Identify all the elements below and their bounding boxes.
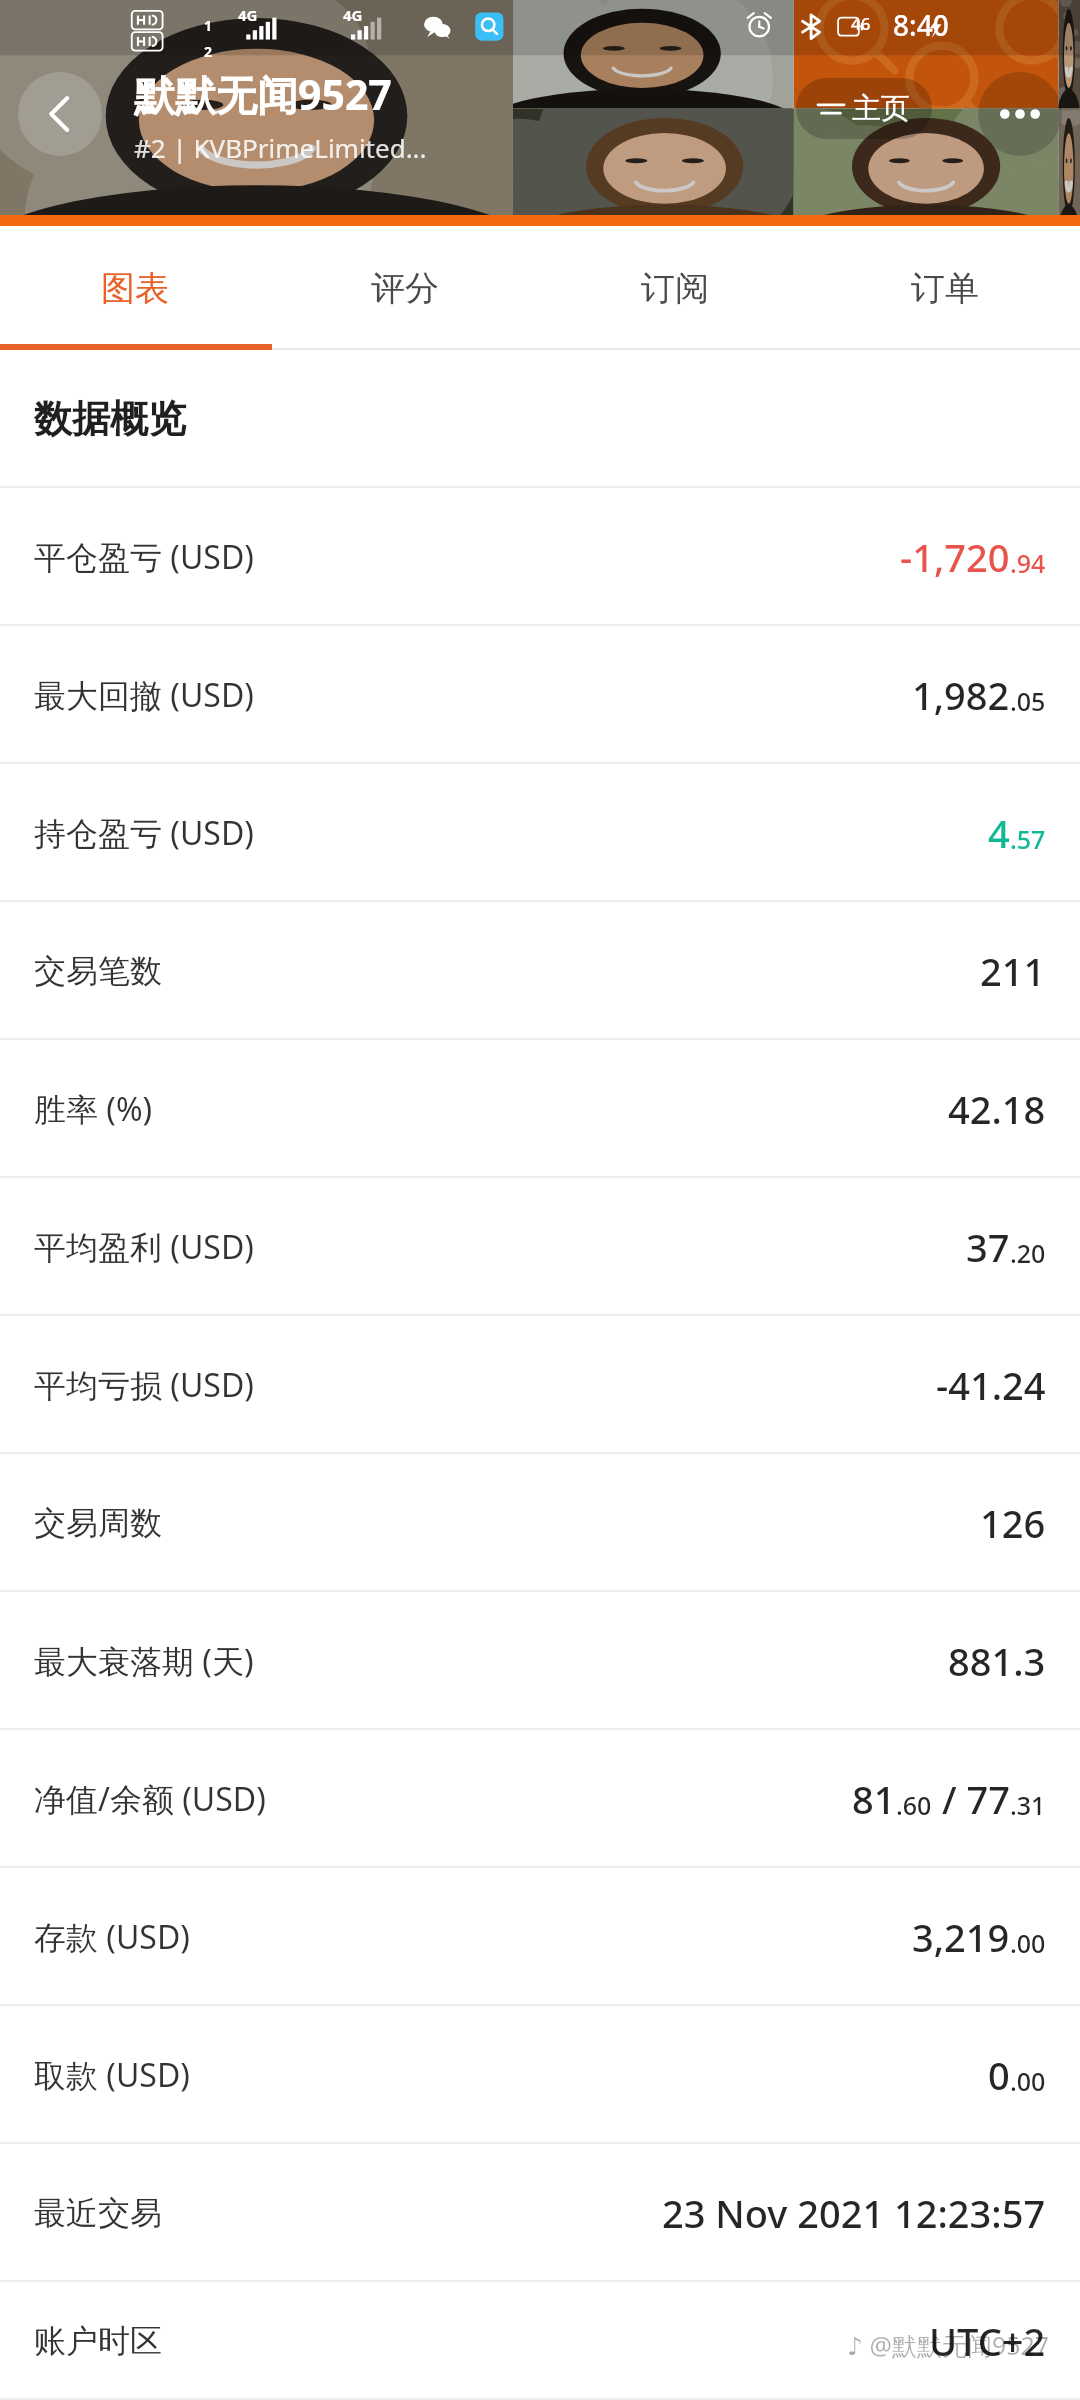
staticText: 81 [852, 1773, 896, 1825]
button[interactable]: 交易笔数 [0, 902, 1080, 1040]
staticText: 1,982 [912, 669, 1010, 721]
staticText: 881.3 [948, 1635, 1046, 1687]
button[interactable]: 平均亏损 (USD) [0, 1316, 1080, 1454]
staticText: 主页 [852, 90, 910, 127]
staticText: 4G [343, 5, 363, 25]
staticText: 1 [204, 16, 213, 35]
staticText: 46 [851, 12, 871, 35]
staticText: .31 [1010, 1788, 1046, 1822]
staticText: 42.18 [948, 1083, 1046, 1135]
staticText: 最近交易 [34, 2193, 162, 2233]
staticText: .94 [1010, 546, 1046, 580]
staticText: 4 [988, 807, 1010, 859]
staticText: 211 [980, 945, 1046, 997]
staticText: .57 [1010, 822, 1046, 856]
staticText: 126 [980, 1497, 1046, 1549]
button[interactable]: 更多 [978, 72, 1062, 156]
button[interactable]: 最大衰落期 (天) [0, 1592, 1080, 1730]
staticText: -1,720 [900, 531, 1010, 583]
staticText: 37 [966, 1221, 1010, 1273]
button[interactable]: 胜率 (%) [0, 1040, 1080, 1178]
staticText: .00 [1010, 2064, 1046, 2098]
staticText: 净值/余额 (USD) [34, 1777, 266, 1821]
staticText: .60 [896, 1788, 932, 1822]
button[interactable]: 最大回撤 (USD) [0, 626, 1080, 764]
staticText: ♪ @默默无闻9527 [847, 2328, 1050, 2362]
staticText: 数据概览 [34, 395, 186, 443]
button[interactable]: 交易周数 [0, 1454, 1080, 1592]
button[interactable]: 订单 [810, 226, 1080, 350]
button[interactable]: 存款 (USD) [0, 1868, 1080, 2006]
staticText: 默默无闻9527 [134, 66, 392, 122]
button[interactable]: 净值/余额 (USD) [0, 1730, 1080, 1868]
staticText: 8:40 [893, 6, 949, 44]
staticText: 存款 (USD) [34, 1915, 190, 1959]
staticText: 2 [204, 42, 213, 61]
button[interactable]: 平仓盈亏 (USD) [0, 488, 1080, 626]
staticText: 平均盈利 (USD) [34, 1225, 254, 1269]
staticText: 最大衰落期 (天) [34, 1639, 254, 1683]
staticText: .20 [1010, 1236, 1046, 1270]
button[interactable]: 图表 [0, 226, 270, 350]
button[interactable]: 平均盈利 (USD) [0, 1178, 1080, 1316]
staticText: 平仓盈亏 (USD) [34, 535, 254, 579]
button[interactable]: 返回 [18, 72, 102, 156]
staticText: 3,219 [912, 1911, 1010, 1963]
button[interactable]: 账户时区 [0, 2282, 1080, 2400]
staticText: 23 Nov 2021 12:23:57 [662, 2187, 1046, 2239]
staticText: 订阅 [641, 267, 709, 310]
button[interactable]: 取款 (USD) [0, 2006, 1080, 2144]
button[interactable]: 主页 [818, 90, 910, 127]
staticText: 最大回撤 (USD) [34, 673, 254, 717]
staticText: 账户时区 [34, 2321, 162, 2361]
staticText: #2 | KVBPrimeLimited... [134, 130, 427, 165]
staticText: 平均亏损 (USD) [34, 1363, 254, 1407]
staticText: 0 [988, 2049, 1010, 2101]
staticText: 取款 (USD) [34, 2053, 190, 2097]
button[interactable]: 持仓盈亏 (USD) [0, 764, 1080, 902]
staticText: 胜率 (%) [34, 1087, 153, 1131]
button[interactable]: 订阅 [540, 226, 810, 350]
staticText: UTC+2 [929, 2315, 1046, 2367]
staticText: / 77 [932, 1773, 1010, 1825]
staticText: .00 [1010, 1926, 1046, 1960]
staticText: 交易笔数 [34, 951, 162, 991]
staticText: 交易周数 [34, 1503, 162, 1543]
staticText: 图表 [101, 267, 169, 310]
button[interactable]: 最近交易 [0, 2144, 1080, 2282]
staticText: .05 [1010, 684, 1046, 718]
staticText: 评分 [371, 267, 439, 310]
staticText: 持仓盈亏 (USD) [34, 811, 254, 855]
button[interactable]: 评分 [270, 226, 540, 350]
staticText: 4G [238, 5, 258, 25]
staticText: -41.24 [936, 1359, 1046, 1411]
staticText: 订单 [911, 267, 979, 310]
